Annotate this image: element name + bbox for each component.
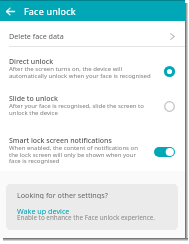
staticText: After the screen turns on, the device wi… [9,65,151,79]
button[interactable]: Delete face data [0,22,185,46]
button[interactable]: Smart lock screen notifications [0,126,185,171]
staticText: After your face is recognised, slide the… [9,102,144,116]
button[interactable]: Direct unlock [0,47,185,81]
button[interactable] [0,1,21,21]
staticText: Looking for other settings? [17,190,108,199]
staticText: Enable to enhance the Face unlock experi… [17,213,156,221]
button[interactable]: Slide to unlock [0,85,185,118]
staticText: Smart lock screen notifications [9,136,112,144]
staticText: Wake up device [17,206,70,215]
button[interactable]: Wake up device [17,206,77,215]
staticText: Face unlock [24,5,76,17]
staticText: When enabled, the content of notificatio… [9,144,138,164]
staticText: Direct unlock [9,57,54,65]
staticText: Slide to unlock [9,94,58,102]
staticText: Delete face data [9,31,64,41]
